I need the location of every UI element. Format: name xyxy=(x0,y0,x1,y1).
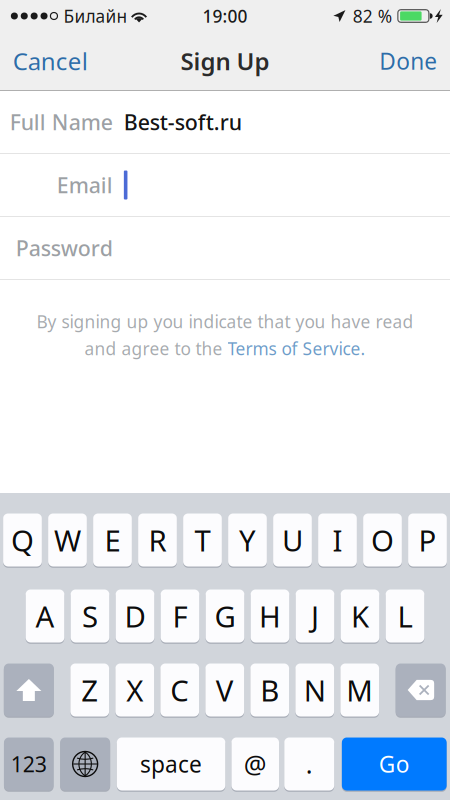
button[interactable]: Email xyxy=(0,154,450,217)
button[interactable]: R xyxy=(138,513,177,566)
button[interactable]: Delete xyxy=(396,663,446,716)
button[interactable]: C xyxy=(160,663,199,716)
staticText: Cancel xyxy=(13,45,88,77)
button[interactable]: X xyxy=(115,663,154,716)
button[interactable]: Go xyxy=(342,737,447,790)
button[interactable]: H xyxy=(251,589,289,642)
staticText: N xyxy=(304,670,326,709)
button[interactable]: N xyxy=(295,663,334,716)
staticText: B xyxy=(260,670,279,709)
staticText: Z xyxy=(81,670,98,709)
button[interactable]: Next keyboard xyxy=(60,737,110,790)
staticText: V xyxy=(216,670,234,709)
staticText: S xyxy=(82,596,98,635)
button[interactable]: U xyxy=(273,513,312,566)
staticText: and agree to the xyxy=(84,337,227,360)
staticText: I xyxy=(332,520,342,559)
staticText: Terms of Service. xyxy=(227,337,365,360)
button[interactable]: . xyxy=(284,737,334,790)
button[interactable]: Q xyxy=(3,513,42,566)
staticText: T xyxy=(194,520,210,559)
staticText: Go xyxy=(379,749,410,779)
staticText: X xyxy=(126,670,143,709)
button[interactable]: Full Name xyxy=(0,91,450,154)
button[interactable]: @ xyxy=(231,737,279,790)
button[interactable]: Password xyxy=(0,217,450,280)
staticText: Full Name xyxy=(10,108,113,136)
staticText: Done xyxy=(379,46,437,76)
button[interactable]: Done xyxy=(366,38,450,84)
button[interactable]: V xyxy=(205,663,244,716)
staticText: P xyxy=(418,520,436,559)
staticText: 19:00 xyxy=(202,4,247,27)
staticText: M xyxy=(346,670,373,709)
button[interactable]: E xyxy=(93,513,132,566)
button[interactable]: A xyxy=(26,589,64,642)
staticText: A xyxy=(35,596,54,635)
staticText: space xyxy=(140,749,202,779)
button[interactable]: Shift xyxy=(4,663,54,716)
button[interactable]: W xyxy=(48,513,87,566)
staticText: U xyxy=(282,520,303,559)
staticText: Y xyxy=(239,520,256,559)
button[interactable]: O xyxy=(363,513,402,566)
button[interactable]: Terms of Service. xyxy=(227,337,365,360)
staticText: Email xyxy=(57,171,113,199)
staticText: Q xyxy=(11,520,34,559)
staticText: G xyxy=(214,596,235,635)
button[interactable]: Cancel xyxy=(0,38,101,84)
staticText: Password xyxy=(16,234,113,262)
button[interactable]: D xyxy=(116,589,154,642)
button[interactable]: T xyxy=(183,513,222,566)
staticText: . xyxy=(306,747,313,781)
staticText: By signing up you indicate that you have… xyxy=(36,310,413,333)
button[interactable]: P xyxy=(408,513,447,566)
button[interactable]: 123 xyxy=(4,737,53,790)
button[interactable]: F xyxy=(161,589,199,642)
staticText: F xyxy=(172,596,187,635)
button[interactable]: S xyxy=(71,589,109,642)
staticText: Best-soft.ru xyxy=(124,108,242,136)
button[interactable]: J xyxy=(296,589,334,642)
staticText: J xyxy=(311,596,319,635)
button[interactable]: I xyxy=(318,513,357,566)
staticText: O xyxy=(371,520,394,559)
button[interactable]: M xyxy=(340,663,379,716)
staticText: Билайн xyxy=(63,4,127,27)
button[interactable]: B xyxy=(250,663,289,716)
button[interactable]: G xyxy=(206,589,244,642)
staticText: Sign Up xyxy=(180,45,269,77)
staticText: @ xyxy=(244,747,267,781)
staticText: H xyxy=(259,596,281,635)
staticText: D xyxy=(124,596,145,635)
button[interactable]: L xyxy=(386,589,424,642)
staticText: K xyxy=(351,596,369,635)
button[interactable]: space xyxy=(117,737,225,790)
staticText: L xyxy=(397,596,412,635)
staticText: W xyxy=(54,520,81,559)
staticText: 82 % xyxy=(353,4,392,27)
button[interactable]: K xyxy=(341,589,379,642)
staticText: E xyxy=(104,520,120,559)
staticText: 123 xyxy=(11,750,47,778)
button[interactable]: Z xyxy=(70,663,109,716)
staticText: C xyxy=(170,670,189,709)
staticText: R xyxy=(148,520,166,559)
button[interactable]: Y xyxy=(228,513,267,566)
